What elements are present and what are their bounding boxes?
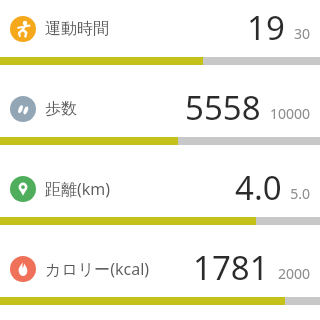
staticText: 10000: [269, 104, 310, 123]
staticText: 5558: [185, 85, 261, 130]
button[interactable]: カロリー(kcal): [0, 240, 320, 320]
staticText: 1781: [193, 245, 269, 290]
staticText: 4.0: [235, 165, 282, 210]
staticText: 30: [293, 24, 310, 43]
button[interactable]: 運動時間: [0, 0, 320, 80]
staticText: 2000: [277, 264, 310, 283]
staticText: 運動時間: [45, 19, 109, 39]
staticText: カロリー(kcal): [45, 258, 150, 280]
button[interactable]: 距離(km): [0, 160, 320, 240]
staticText: 5.0: [290, 184, 310, 203]
staticText: 歩数: [45, 99, 77, 119]
staticText: 距離(km): [45, 178, 111, 200]
staticText: 19: [247, 5, 285, 50]
button[interactable]: 歩数: [0, 80, 320, 160]
